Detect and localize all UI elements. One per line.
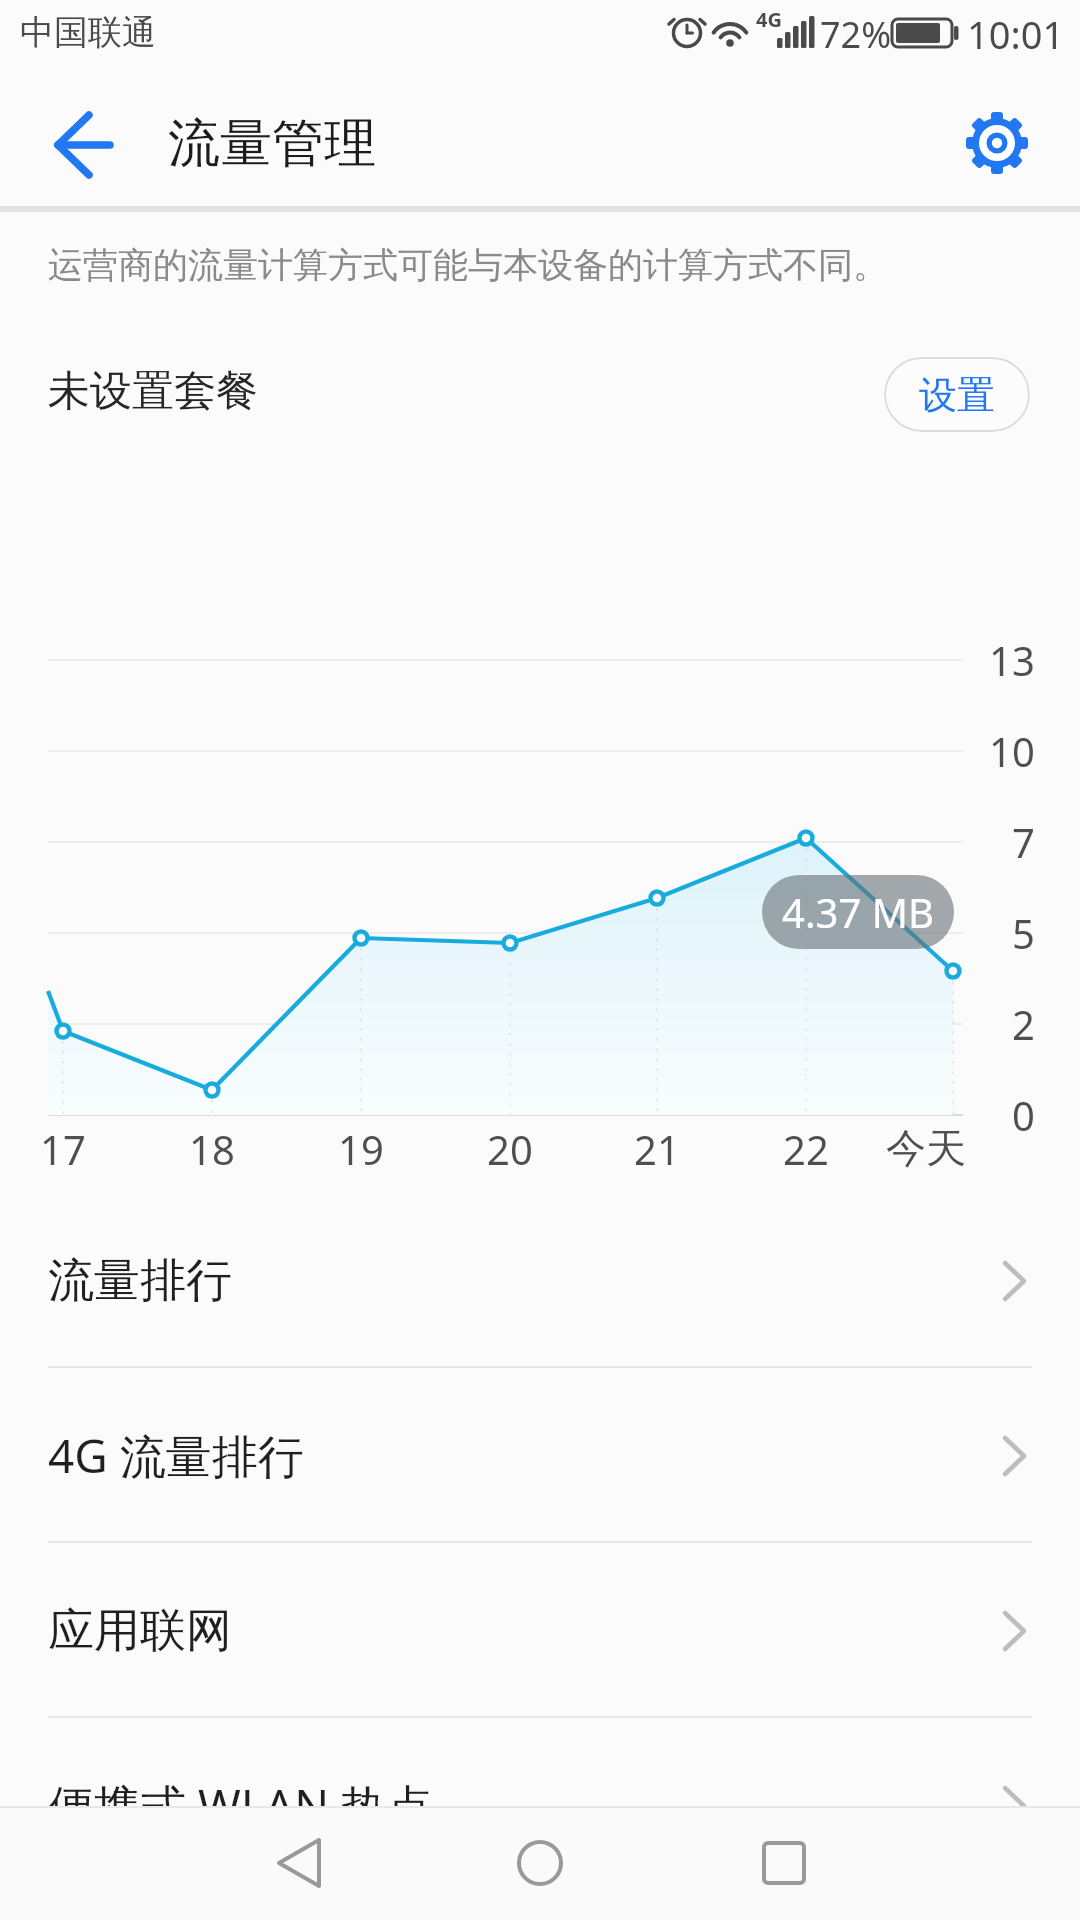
staticText: 应用联网 xyxy=(48,1602,232,1660)
button[interactable]: 应用联网 xyxy=(0,1543,1080,1718)
staticText: 72% xyxy=(820,10,892,59)
staticText: 今天 xyxy=(886,1123,966,1173)
staticText: 10:01 xyxy=(967,8,1065,60)
staticText: 17 xyxy=(40,1122,86,1174)
button[interactable]: 流量排行 xyxy=(0,1193,1080,1368)
staticText: 0 xyxy=(1012,1088,1035,1142)
staticText: 2 xyxy=(1012,997,1035,1051)
button[interactable] xyxy=(958,104,1036,182)
staticText: 4.37 MB xyxy=(782,885,935,939)
staticText: 5 xyxy=(1012,906,1035,960)
staticText: 设置 xyxy=(919,371,995,419)
staticText: 便携式 WLAN 热点 xyxy=(48,1774,434,1837)
staticText: 中国联通 xyxy=(20,11,156,54)
button[interactable]: 便携式 WLAN 热点 xyxy=(0,1718,1080,1893)
button[interactable] xyxy=(470,1806,610,1920)
staticText: 22 xyxy=(783,1122,829,1174)
staticText: 7 xyxy=(1012,815,1035,869)
button[interactable] xyxy=(714,1806,854,1920)
staticText: 10 xyxy=(989,724,1035,778)
button[interactable] xyxy=(230,1806,370,1920)
button[interactable]: 4G 流量排行 xyxy=(0,1368,1080,1543)
staticText: 4G 流量排行 xyxy=(48,1424,304,1487)
staticText: 21 xyxy=(634,1122,680,1174)
staticText: 13 xyxy=(989,633,1035,687)
staticText: 流量管理 xyxy=(168,111,376,177)
staticText: 18 xyxy=(189,1122,235,1174)
staticText: 20 xyxy=(487,1122,533,1174)
staticText: 未设置套餐 xyxy=(48,365,258,418)
staticText: 流量排行 xyxy=(48,1252,232,1310)
staticText: 19 xyxy=(338,1122,384,1174)
staticText: 运营商的流量计算方式可能与本设备的计算方式不同。 xyxy=(48,243,888,287)
button[interactable]: 设置 xyxy=(884,357,1030,432)
button[interactable] xyxy=(40,105,120,185)
staticText: 4G xyxy=(756,6,782,33)
